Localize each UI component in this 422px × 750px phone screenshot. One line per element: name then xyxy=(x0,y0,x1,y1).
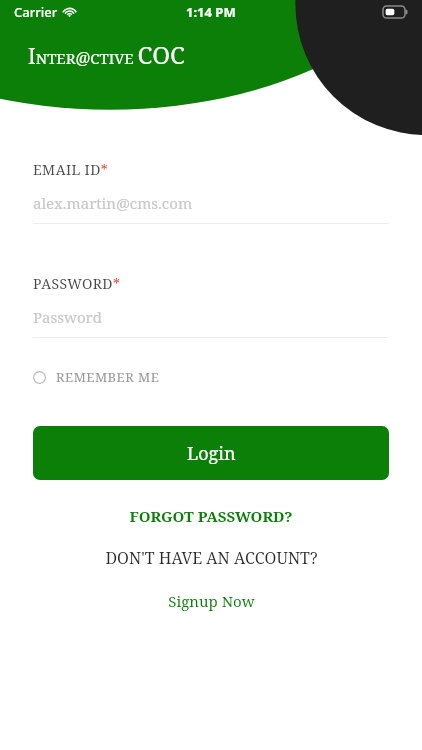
button[interactable]: FORGOT PASSWORD? xyxy=(33,502,389,530)
staticText: alex.martin@cms.com xyxy=(33,193,193,213)
staticText: FORGOT PASSWORD? xyxy=(129,506,293,526)
staticText: Login xyxy=(187,441,236,466)
button[interactable]: Login xyxy=(33,426,389,480)
staticText: Password xyxy=(33,307,102,327)
button[interactable]: alex.martin@cms.com xyxy=(33,193,389,213)
staticText: Signup Now xyxy=(168,591,255,611)
staticText: REMEMBER ME xyxy=(56,368,160,386)
staticText: 1:14 PM xyxy=(186,3,236,21)
staticText: DON'T HAVE AN ACCOUNT? xyxy=(105,547,318,569)
button[interactable]: Password xyxy=(33,307,389,327)
button[interactable]: REMEMBER ME xyxy=(33,364,160,390)
staticText: INTER@CTIVE COC xyxy=(28,38,185,71)
staticText: EMAIL ID* xyxy=(33,160,109,179)
staticText: PASSWORD* xyxy=(33,274,121,293)
staticText: Carrier xyxy=(14,3,58,21)
button[interactable]: Signup Now xyxy=(33,587,389,615)
